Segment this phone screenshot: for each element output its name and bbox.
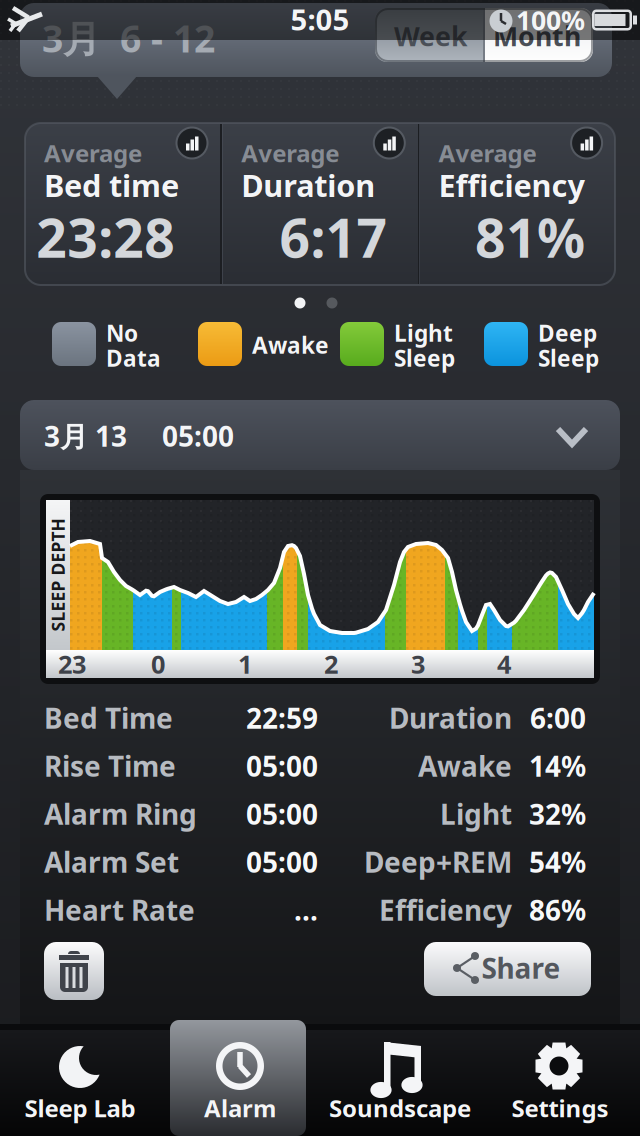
staticText: 05:00 xyxy=(246,747,318,785)
staticText: Awake xyxy=(418,747,512,785)
staticText: Bed Time xyxy=(44,699,173,737)
staticText: Efficiency xyxy=(439,165,586,205)
staticText: 3月 13 05:00 xyxy=(44,417,234,455)
staticText: Awake xyxy=(252,330,329,360)
staticText: Sleep xyxy=(538,343,599,373)
staticText: 86% xyxy=(529,891,586,929)
staticText: 100% xyxy=(516,2,585,38)
button[interactable]: Delete xyxy=(44,942,104,1000)
staticText: Duration xyxy=(389,699,512,737)
staticText: 6:17 xyxy=(280,202,388,272)
staticText: 05:00 xyxy=(246,843,318,881)
button[interactable]: Sleep Lab xyxy=(0,1030,160,1136)
button[interactable]: Statistics xyxy=(373,126,406,159)
button[interactable]: Month xyxy=(484,8,593,62)
button[interactable]: Alarm xyxy=(160,1030,320,1136)
staticText: SLEEP DEPTH xyxy=(1,563,114,586)
staticText: Alarm Set xyxy=(44,843,179,881)
staticText: 3月 6 - 12 xyxy=(42,13,215,63)
staticText: Alarm Ring xyxy=(44,795,197,833)
staticText: 5:05 xyxy=(290,0,349,38)
staticText: Average xyxy=(439,137,537,169)
staticText: 0 xyxy=(151,647,165,681)
staticText: Alarm xyxy=(204,1092,276,1124)
staticText: 05:00 xyxy=(246,795,318,833)
staticText: 3 xyxy=(411,647,425,681)
staticText: Average xyxy=(241,137,339,169)
staticText: 81% xyxy=(475,202,585,272)
staticText: Light xyxy=(440,795,512,833)
button[interactable]: Settings xyxy=(480,1030,640,1136)
staticText: Bed time xyxy=(44,165,179,205)
staticText: 32% xyxy=(529,795,586,833)
staticText: Data xyxy=(106,343,161,373)
staticText: Week xyxy=(394,18,468,54)
staticText: 6:00 xyxy=(530,699,586,737)
staticText: Soundscape xyxy=(329,1092,471,1124)
button[interactable]: Statistics xyxy=(175,126,208,159)
staticText: 23 xyxy=(58,647,86,681)
button[interactable]: Share xyxy=(424,942,591,996)
button[interactable]: Soundscape xyxy=(320,1030,480,1136)
staticText: 2 xyxy=(324,647,338,681)
button[interactable]: Toggle day details xyxy=(20,400,620,470)
staticText: Month xyxy=(493,18,581,54)
button[interactable]: Statistics xyxy=(570,126,603,159)
staticText: Sleep xyxy=(394,343,455,373)
button[interactable]: Week xyxy=(375,8,484,62)
staticText: 23:28 xyxy=(36,202,175,272)
staticText: 14% xyxy=(529,747,586,785)
staticText: Sleep Lab xyxy=(24,1092,135,1124)
staticText: Share xyxy=(481,949,560,987)
staticText: 22:59 xyxy=(246,699,318,737)
staticText: Average xyxy=(44,137,142,169)
staticText: 4 xyxy=(497,647,511,681)
staticText: Light xyxy=(394,318,453,348)
staticText: 1 xyxy=(238,647,252,681)
staticText: Duration xyxy=(241,165,375,205)
staticText: Rise Time xyxy=(44,747,176,785)
staticText: Settings xyxy=(511,1092,608,1124)
staticText: Heart Rate xyxy=(44,891,195,929)
staticText: Deep+REM xyxy=(364,843,512,881)
staticText: 54% xyxy=(529,843,586,881)
staticText: ... xyxy=(294,891,318,929)
staticText: Efficiency xyxy=(379,891,512,929)
staticText: Deep xyxy=(538,318,597,348)
staticText: No xyxy=(106,318,138,348)
